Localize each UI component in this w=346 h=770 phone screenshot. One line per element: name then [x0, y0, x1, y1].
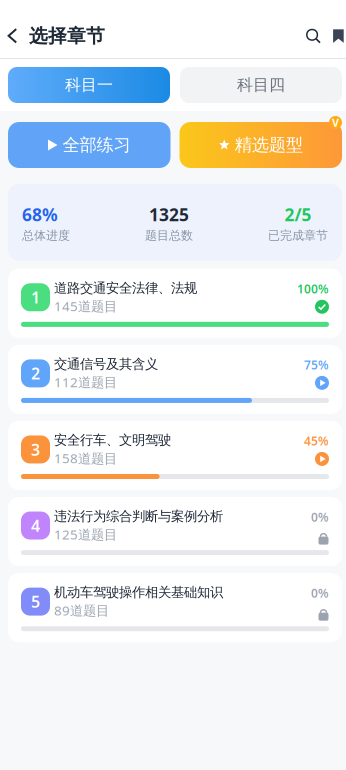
staticText: 0% [311, 585, 329, 601]
staticText: 选择章节 [29, 24, 105, 47]
staticText: 总体进度 [22, 228, 70, 243]
staticText: 75% [304, 357, 329, 373]
staticText: 全部练习 [62, 134, 130, 156]
staticText: 100% [297, 281, 329, 297]
staticText: 道路交通安全法律、法规 [54, 280, 197, 296]
button[interactable]: 全部练习 [8, 122, 170, 168]
staticText: 交通信号及其含义 [54, 356, 158, 372]
staticText: 3 [31, 439, 40, 460]
button[interactable]: 精选题型 [179, 122, 342, 168]
button[interactable]: 5 [8, 573, 342, 642]
staticText: 45% [304, 433, 329, 449]
staticText: 机动车驾驶操作相关基础知识 [54, 584, 223, 600]
button[interactable]: 3 [8, 421, 342, 490]
button[interactable]: Bookmark [327, 23, 346, 49]
button[interactable]: 4 [8, 497, 342, 566]
staticText: 158道题目 [54, 449, 117, 467]
staticText: 68% [22, 203, 58, 226]
button[interactable]: Search [300, 22, 327, 49]
staticText: 5 [31, 591, 40, 612]
staticText: 安全行车、文明驾驶 [54, 432, 171, 448]
staticText: 1325 [149, 203, 189, 226]
staticText: 科目一 [65, 75, 113, 95]
staticText: 2/5 [284, 203, 311, 226]
staticText: 1 [31, 287, 40, 308]
staticText: 89道题目 [54, 601, 109, 619]
staticText: V [332, 115, 339, 130]
staticText: 145道题目 [54, 297, 117, 315]
staticText: 已完成章节 [268, 228, 328, 243]
button[interactable]: 科目一 [8, 67, 170, 103]
staticText: 0% [311, 509, 329, 525]
staticText: 4 [31, 515, 40, 536]
button[interactable]: Back [0, 22, 29, 50]
staticText: 题目总数 [145, 228, 193, 243]
button[interactable]: 科目四 [180, 67, 342, 103]
staticText: 科目四 [237, 75, 285, 95]
staticText: 2 [31, 363, 40, 384]
staticText: 精选题型 [235, 134, 303, 156]
button[interactable]: 1 [8, 269, 342, 338]
staticText: 125道题目 [54, 525, 117, 543]
staticText: 违法行为综合判断与案例分析 [54, 508, 223, 524]
button[interactable]: 2 [8, 345, 342, 414]
staticText: 112道题目 [54, 373, 117, 391]
